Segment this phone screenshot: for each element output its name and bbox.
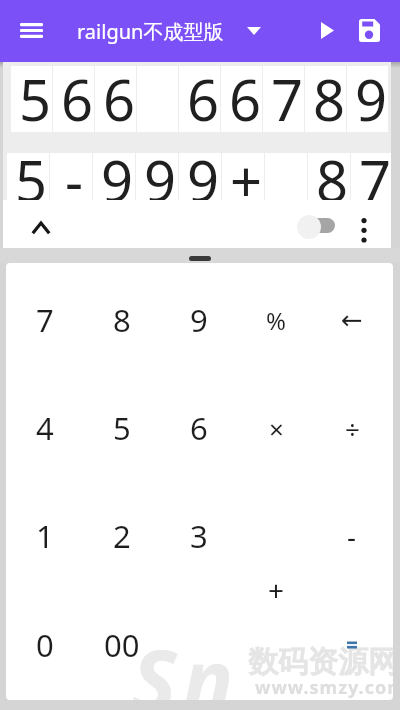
staticText: 7 xyxy=(359,142,391,189)
staticText: 9 xyxy=(190,299,208,341)
staticText: 5 xyxy=(15,142,48,189)
button[interactable]: % xyxy=(238,288,314,352)
staticText: 7 xyxy=(36,299,54,341)
button[interactable]: 6 xyxy=(53,66,94,132)
button[interactable]: 9 xyxy=(347,66,388,132)
button[interactable]: 7 xyxy=(351,153,391,200)
button[interactable] xyxy=(19,210,63,244)
button[interactable]: 6 xyxy=(95,66,136,132)
button[interactable]: 7 xyxy=(263,66,304,132)
button[interactable]: ← xyxy=(314,288,390,352)
button[interactable]: 4 xyxy=(7,396,83,460)
staticText: 4 xyxy=(36,407,54,449)
staticText: - xyxy=(65,142,84,189)
staticText: 5 xyxy=(113,407,131,449)
button[interactable]: 6 xyxy=(221,66,262,132)
staticText: + xyxy=(230,142,263,189)
staticText: 0 xyxy=(36,624,54,666)
staticText: 9 xyxy=(355,62,388,127)
button[interactable]: 8 xyxy=(308,153,350,200)
staticText: 8 xyxy=(113,299,131,341)
button[interactable]: 0 xyxy=(7,613,83,677)
staticText: - xyxy=(347,517,357,555)
button[interactable]: - xyxy=(314,504,390,568)
button[interactable] xyxy=(291,210,343,240)
button[interactable]: 3 xyxy=(161,504,237,568)
button[interactable]: 8 xyxy=(305,66,346,132)
staticText: 9 xyxy=(101,142,134,189)
button[interactable]: - xyxy=(50,153,92,200)
staticText: ← xyxy=(341,305,363,335)
button[interactable]: 7 xyxy=(7,288,83,352)
button[interactable]: 9 xyxy=(179,153,221,200)
button[interactable]: 9 xyxy=(93,153,135,200)
button[interactable]: 2 xyxy=(84,504,160,568)
staticText: Sn xyxy=(132,621,240,700)
staticText: 9 xyxy=(144,142,177,189)
staticText: 6 xyxy=(190,407,208,449)
button[interactable]: + xyxy=(238,558,314,622)
button[interactable]: 5 xyxy=(84,396,160,460)
staticText: × xyxy=(269,411,284,446)
button[interactable]: 8 xyxy=(84,288,160,352)
staticText: 7 xyxy=(271,62,304,127)
button[interactable]: 1 xyxy=(7,504,83,568)
button[interactable]: + xyxy=(222,153,264,200)
button[interactable]: 9 xyxy=(161,288,237,352)
staticText: + xyxy=(268,571,285,609)
staticText: 9 xyxy=(187,142,220,189)
staticText: ÷ xyxy=(345,411,360,446)
button[interactable] xyxy=(238,16,270,46)
staticText: 6 xyxy=(61,62,94,127)
button[interactable]: × xyxy=(238,396,314,460)
staticText: 00 xyxy=(104,624,140,666)
staticText: 6 xyxy=(229,62,262,127)
button[interactable]: 9 xyxy=(136,153,178,200)
button[interactable]: 5 xyxy=(7,153,49,200)
staticText: 2 xyxy=(113,515,131,557)
button[interactable] xyxy=(352,13,386,47)
button[interactable]: 6 xyxy=(179,66,220,132)
button[interactable]: 00 xyxy=(84,613,160,677)
staticText: 8 xyxy=(316,142,349,189)
button[interactable] xyxy=(310,14,344,46)
button[interactable]: ÷ xyxy=(314,396,390,460)
staticText: 8 xyxy=(313,62,346,127)
staticText: 6 xyxy=(103,62,136,127)
staticText: 数码资源网 xyxy=(248,643,393,681)
staticText: 3 xyxy=(190,515,208,557)
staticText: 1 xyxy=(36,515,54,557)
button[interactable] xyxy=(349,212,379,248)
staticText: 6 xyxy=(187,62,220,127)
button[interactable] xyxy=(322,615,382,675)
staticText: 5 xyxy=(19,62,52,127)
button[interactable]: 6 xyxy=(161,396,237,460)
button[interactable] xyxy=(12,14,50,46)
staticText: % xyxy=(266,304,286,337)
staticText: railgun不成型版 xyxy=(77,18,224,45)
staticText: www.smzy.com xyxy=(255,675,393,700)
button[interactable]: 5 xyxy=(11,66,52,132)
